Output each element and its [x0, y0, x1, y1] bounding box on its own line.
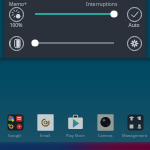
button[interactable]: Settings: [123, 32, 145, 54]
button[interactable]: Management: [120, 114, 150, 138]
staticText: Auto: [126, 22, 142, 29]
button[interactable]: Volume slider: [30, 37, 122, 49]
staticText: Play Store: [66, 133, 85, 138]
button[interactable]: Email: [30, 114, 60, 138]
button[interactable]: Google: [0, 114, 30, 138]
button[interactable]: Play Store: [60, 114, 90, 138]
staticText: Management: [122, 133, 148, 138]
button[interactable]: Brightness: [5, 3, 27, 25]
staticText: Camera: [98, 133, 113, 138]
button[interactable]: Auto brightness: [123, 3, 145, 25]
button[interactable]: Sound mode: [5, 32, 27, 54]
staticText: Google: [8, 133, 22, 138]
staticText: Email: [40, 133, 51, 138]
staticText: Memo+: [9, 1, 27, 8]
button[interactable]: Camera: [90, 114, 120, 138]
button[interactable]: Brightness slider: [30, 8, 122, 20]
staticText: 100%: [8, 22, 24, 29]
staticText: Interruptions: [86, 1, 118, 8]
